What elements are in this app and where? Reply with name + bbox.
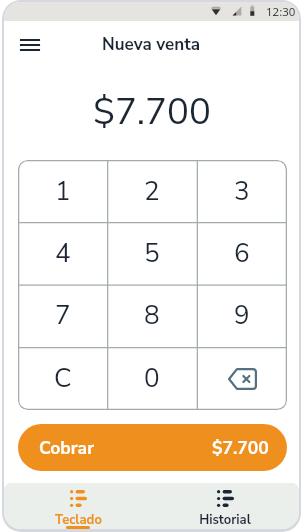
staticText: 0 — [144, 361, 160, 396]
staticText: 7 — [55, 298, 71, 333]
staticText: Nueva venta — [102, 33, 201, 56]
staticText: Cobrar — [39, 436, 95, 460]
button[interactable]: C — [18, 347, 107, 410]
staticText: 1 — [55, 174, 71, 209]
button[interactable]: 8 — [107, 284, 197, 347]
button[interactable]: Cobrar — [18, 424, 287, 471]
staticText: $7.700 — [212, 436, 269, 460]
staticText: 3 — [234, 174, 250, 209]
staticText: 12:30 — [266, 4, 296, 20]
button[interactable]: Historial — [173, 483, 277, 529]
staticText: 8 — [144, 298, 160, 333]
other: Backspace — [227, 368, 257, 390]
button[interactable]: 4 — [18, 222, 107, 284]
button[interactable]: 3 — [197, 160, 287, 222]
button[interactable]: Menu — [13, 28, 47, 62]
button[interactable]: 2 — [107, 160, 197, 222]
button[interactable]: Teclado — [26, 483, 130, 529]
staticText: 9 — [234, 298, 250, 333]
staticText: 6 — [234, 236, 250, 271]
button[interactable]: Backspace — [197, 347, 287, 410]
staticText: C — [54, 361, 72, 396]
button[interactable]: 5 — [107, 222, 197, 284]
staticText: 4 — [55, 236, 71, 271]
button[interactable]: 7 — [18, 284, 107, 347]
staticText: Historial — [199, 511, 251, 529]
staticText: $7.700 — [93, 87, 211, 137]
staticText: 5 — [144, 236, 160, 271]
staticText: Teclado — [55, 511, 102, 529]
button[interactable]: 6 — [197, 222, 287, 284]
staticText: 2 — [144, 174, 160, 209]
button[interactable]: 0 — [107, 347, 197, 410]
button[interactable]: 1 — [18, 160, 107, 222]
button[interactable]: 9 — [197, 284, 287, 347]
